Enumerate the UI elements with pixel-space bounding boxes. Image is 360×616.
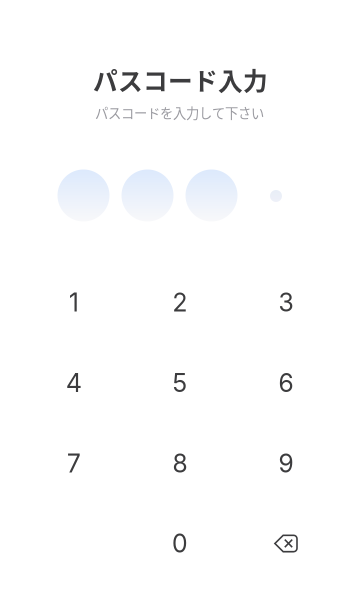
button[interactable]: 7: [21, 423, 127, 503]
staticText: パスコード入力: [93, 62, 268, 97]
staticText: 5: [172, 368, 187, 398]
button[interactable]: 3: [233, 262, 339, 342]
button[interactable]: 4: [21, 343, 127, 423]
button[interactable]: Delete: [233, 503, 339, 583]
staticText: 2: [172, 287, 187, 317]
button[interactable]: 9: [233, 423, 339, 503]
staticText: パスコードを入力して下さい: [95, 103, 264, 122]
staticText: 9: [278, 448, 293, 478]
button[interactable]: 1: [21, 262, 127, 342]
staticText: 3: [278, 287, 293, 317]
staticText: 8: [172, 448, 187, 478]
button[interactable]: 2: [127, 262, 233, 342]
button[interactable]: 6: [233, 343, 339, 423]
button[interactable]: 5: [127, 343, 233, 423]
staticText: 0: [172, 528, 188, 558]
button[interactable]: 8: [127, 423, 233, 503]
staticText: 4: [66, 368, 82, 398]
button[interactable]: 0: [127, 503, 233, 583]
staticText: 6: [278, 368, 293, 398]
staticText: 7: [67, 448, 81, 478]
staticText: 1: [69, 287, 79, 317]
